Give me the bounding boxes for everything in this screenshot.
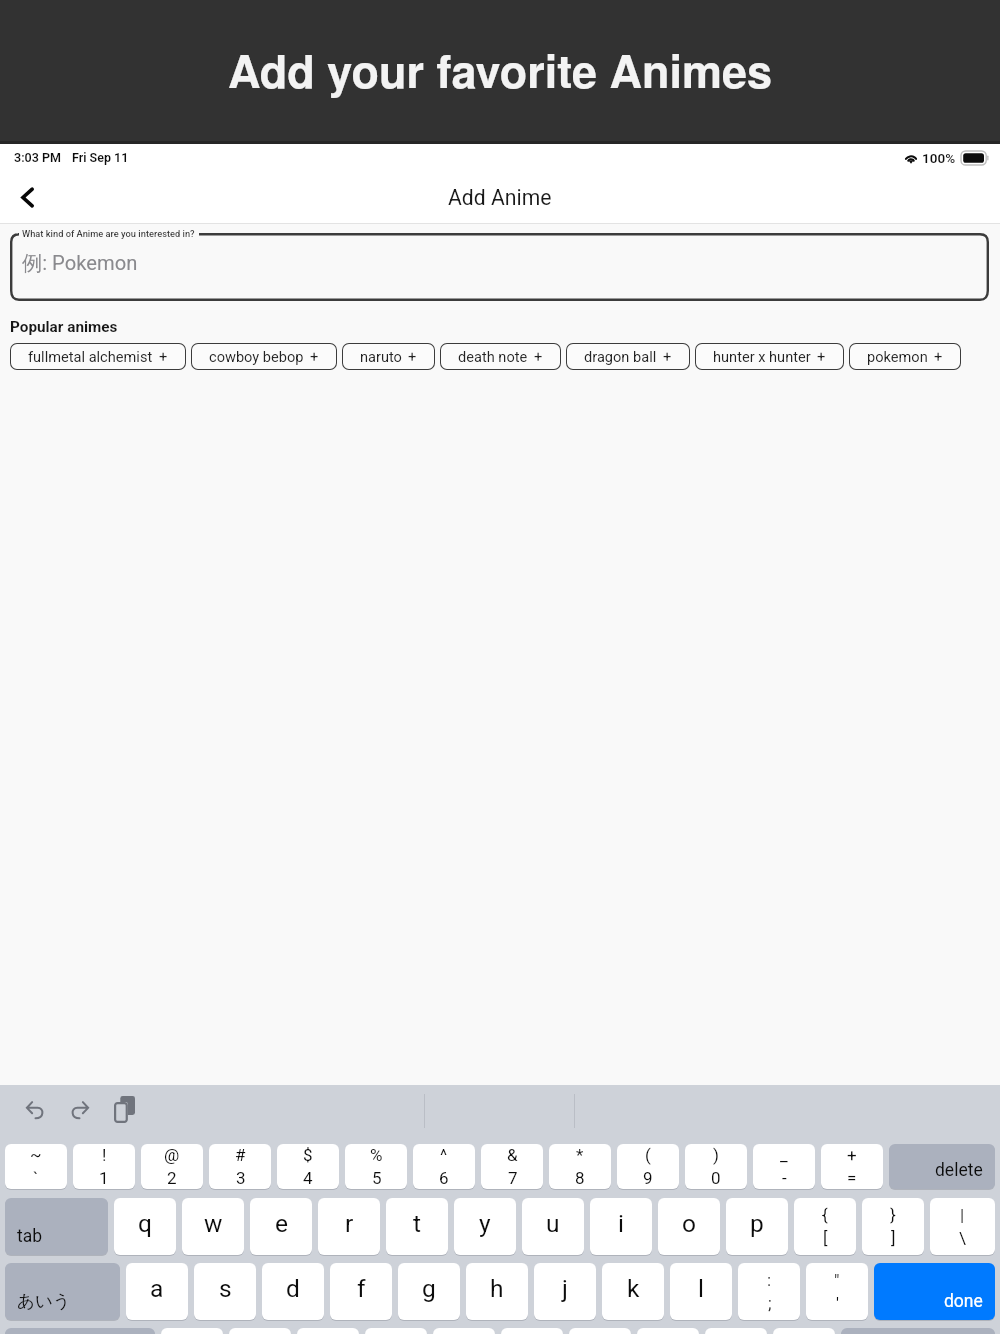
button[interactable]: Redo [63, 1093, 95, 1125]
button[interactable]: t [386, 1198, 448, 1255]
button[interactable]: ~ [5, 1144, 67, 1189]
staticText: 例: Pokemon [22, 251, 138, 276]
button[interactable]: q [114, 1198, 176, 1255]
staticText: o [682, 1209, 696, 1238]
button[interactable]: h [466, 1263, 528, 1320]
staticText: tab [17, 1226, 43, 1247]
staticText: g [422, 1274, 436, 1303]
staticText: { [822, 1205, 828, 1225]
button[interactable]: death note [440, 343, 561, 370]
button[interactable]: ) [685, 1144, 747, 1189]
staticText: d [286, 1274, 300, 1303]
staticText: l [698, 1274, 704, 1303]
button[interactable]: Paste [108, 1093, 140, 1125]
staticText: 7 [508, 1168, 518, 1188]
button[interactable]: w [182, 1198, 244, 1255]
button[interactable]: ^ [413, 1144, 475, 1189]
button[interactable]: done [874, 1263, 995, 1320]
staticText: death note [458, 348, 528, 365]
button[interactable]: Shift [841, 1328, 995, 1334]
button[interactable]: l [670, 1263, 732, 1320]
button[interactable]: delete [889, 1144, 995, 1189]
button[interactable]: g [398, 1263, 460, 1320]
staticText: s [219, 1274, 232, 1303]
button[interactable]: Key [637, 1328, 699, 1334]
button[interactable]: Key [501, 1328, 563, 1334]
button[interactable]: o [658, 1198, 720, 1255]
staticText: Popular animes [10, 318, 118, 336]
button[interactable]: % [345, 1144, 407, 1189]
button[interactable]: e [250, 1198, 312, 1255]
staticText: あいう [17, 1290, 71, 1312]
button[interactable]: | [930, 1198, 995, 1255]
button[interactable]: Key [297, 1328, 359, 1334]
button[interactable]: Key [161, 1328, 223, 1334]
button[interactable]: d [262, 1263, 324, 1320]
staticText: cowboy bebop [209, 348, 304, 365]
button[interactable]: + [821, 1144, 883, 1189]
staticText: _ [780, 1145, 788, 1165]
button[interactable]: Key [773, 1328, 835, 1334]
button[interactable]: あいう [5, 1263, 120, 1320]
button[interactable]: naruto [342, 343, 435, 370]
staticText: Fri Sep 11 [72, 150, 129, 165]
button[interactable]: r [318, 1198, 380, 1255]
staticText: 4 [303, 1168, 313, 1188]
button[interactable]: $ [277, 1144, 339, 1189]
button[interactable]: } [862, 1198, 924, 1255]
button[interactable]: ( [617, 1144, 679, 1189]
button[interactable]: cowboy bebop [191, 343, 337, 370]
button[interactable]: " [806, 1263, 868, 1320]
staticText: ! [102, 1145, 107, 1165]
button[interactable]: Shift [5, 1328, 155, 1334]
staticText: 3 [236, 1168, 246, 1188]
staticText: # [235, 1145, 246, 1165]
button[interactable]: ! [73, 1144, 135, 1189]
staticText: | [960, 1205, 965, 1225]
button[interactable]: s [194, 1263, 256, 1320]
button[interactable]: _ [753, 1144, 815, 1189]
staticText: + [159, 348, 168, 365]
staticText: y [479, 1209, 491, 1238]
staticText: = [847, 1168, 857, 1188]
button[interactable]: i [590, 1198, 652, 1255]
button[interactable]: Undo [19, 1093, 51, 1125]
staticText: 8 [575, 1168, 585, 1188]
staticText: 1 [99, 1168, 109, 1188]
button[interactable]: pokemon [849, 343, 961, 370]
button[interactable]: Key [705, 1328, 767, 1334]
button[interactable]: dragon ball [566, 343, 690, 370]
button[interactable]: a [126, 1263, 188, 1320]
button[interactable]: Key [569, 1328, 631, 1334]
staticText: e [275, 1209, 288, 1238]
button[interactable]: Back [6, 175, 50, 219]
button[interactable]: y [454, 1198, 516, 1255]
button[interactable]: fullmetal alchemist [10, 343, 186, 370]
staticText: % [370, 1145, 383, 1165]
button[interactable]: : [738, 1263, 800, 1320]
button[interactable]: Key [365, 1328, 427, 1334]
staticText: 3:03 PM [14, 150, 61, 165]
button[interactable]: p [726, 1198, 788, 1255]
button[interactable]: tab [5, 1198, 108, 1255]
staticText: ; [768, 1293, 772, 1313]
button[interactable]: @ [141, 1144, 203, 1189]
staticText: What kind of Anime are you interested in… [22, 228, 195, 239]
button[interactable]: { [794, 1198, 856, 1255]
staticText: w [204, 1209, 223, 1238]
button[interactable]: Key [229, 1328, 291, 1334]
button[interactable]: # [209, 1144, 271, 1189]
button[interactable]: j [534, 1263, 596, 1320]
button[interactable]: hunter x hunter [695, 343, 844, 370]
staticText: dragon ball [584, 348, 657, 365]
button[interactable]: & [481, 1144, 543, 1189]
staticText: : [767, 1270, 772, 1290]
staticText: k [627, 1274, 640, 1303]
button[interactable]: * [549, 1144, 611, 1189]
staticText: + [817, 348, 826, 365]
button[interactable]: f [330, 1263, 392, 1320]
button[interactable]: Key [433, 1328, 495, 1334]
button[interactable]: k [602, 1263, 664, 1320]
staticText: h [490, 1274, 504, 1303]
button[interactable]: u [522, 1198, 584, 1255]
